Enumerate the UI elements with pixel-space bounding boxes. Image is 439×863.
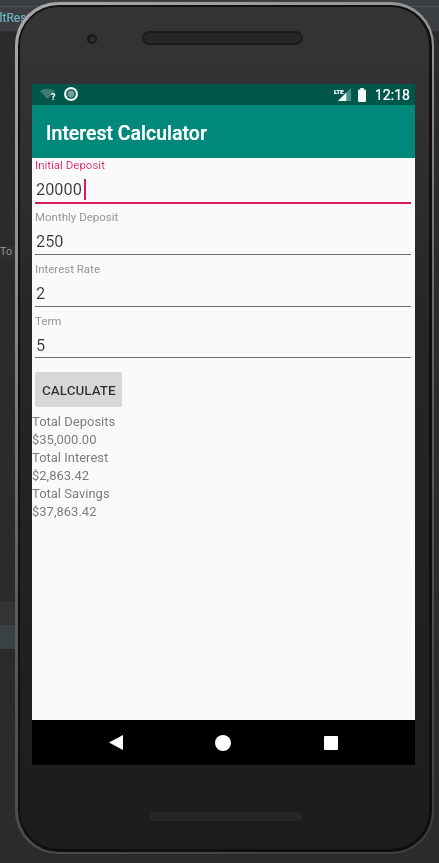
staticText: Total Deposits — [32, 414, 116, 429]
staticText: $35,000.00 — [32, 432, 97, 447]
button[interactable]: Home — [199, 720, 247, 765]
button[interactable]: CALCULATE — [35, 372, 122, 407]
staticText: LTE — [334, 88, 344, 95]
button[interactable]: Back — [92, 720, 140, 765]
staticText: Interest Rate — [35, 262, 100, 275]
staticText: ? — [51, 92, 56, 103]
staticText: 250 — [36, 232, 64, 251]
staticText: Initial Deposit — [35, 158, 105, 171]
staticText: To — [0, 245, 13, 258]
button[interactable]: Recent apps — [307, 720, 355, 765]
staticText: 5 — [36, 336, 46, 355]
staticText: CALCULATE — [42, 382, 116, 398]
staticText: 20000 — [36, 180, 82, 199]
staticText: Total Interest — [32, 450, 109, 465]
staticText: $2,863.42 — [32, 468, 90, 483]
staticText: 12:18 — [375, 87, 410, 103]
staticText: Monthly Deposit — [35, 210, 119, 223]
staticText: Interest Calculator — [46, 122, 207, 145]
staticText: ultRes — [0, 11, 27, 25]
staticText: Term — [35, 314, 62, 327]
staticText: Total Savings — [32, 486, 110, 501]
staticText: 2 — [36, 284, 46, 303]
staticText: $37,863.42 — [32, 504, 97, 519]
